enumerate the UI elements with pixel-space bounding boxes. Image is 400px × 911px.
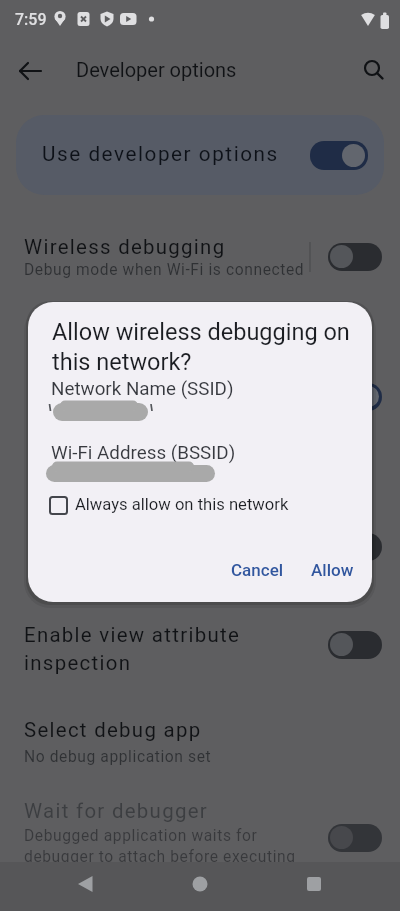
staticText: Wi-Fi Address (BSSID) <box>51 442 236 464</box>
staticText: Debugged application waits for debugger … <box>24 827 296 866</box>
button[interactable] <box>310 141 368 170</box>
button[interactable] <box>170 862 230 911</box>
button[interactable] <box>16 115 384 195</box>
button[interactable] <box>0 795 400 861</box>
staticText: Network Name (SSID) <box>51 378 234 400</box>
button[interactable] <box>0 620 400 682</box>
button[interactable] <box>328 631 382 659</box>
staticText: Wireless debugging <box>24 235 226 259</box>
button[interactable] <box>352 49 396 93</box>
button[interactable] <box>0 228 310 284</box>
button[interactable] <box>328 824 382 852</box>
button[interactable]: Cancel <box>217 550 299 590</box>
staticText: Use developer options <box>42 142 279 166</box>
staticText: No debug application set <box>24 748 212 766</box>
button[interactable] <box>328 533 382 561</box>
staticText: Allow wireless debugging on this network… <box>52 318 350 376</box>
button[interactable] <box>284 862 344 911</box>
button[interactable] <box>8 49 52 93</box>
button[interactable] <box>42 489 292 523</box>
staticText: 7:59 <box>15 10 47 29</box>
staticText: Allow <box>311 560 354 580</box>
button[interactable] <box>328 383 382 411</box>
staticText: Select debug app <box>24 718 202 742</box>
staticText: Debug mode when Wi-Fi is connected <box>24 261 305 279</box>
staticText: Developer options <box>76 58 237 81</box>
button[interactable]: Allow <box>301 550 367 590</box>
button[interactable] <box>0 715 400 770</box>
staticText: Enable view attribute inspection <box>24 623 241 675</box>
staticText: Wait for debugger <box>24 799 208 823</box>
staticText: Always allow on this network <box>75 495 289 514</box>
button[interactable] <box>328 243 382 271</box>
staticText: Cancel <box>231 560 284 580</box>
button[interactable] <box>58 862 118 911</box>
